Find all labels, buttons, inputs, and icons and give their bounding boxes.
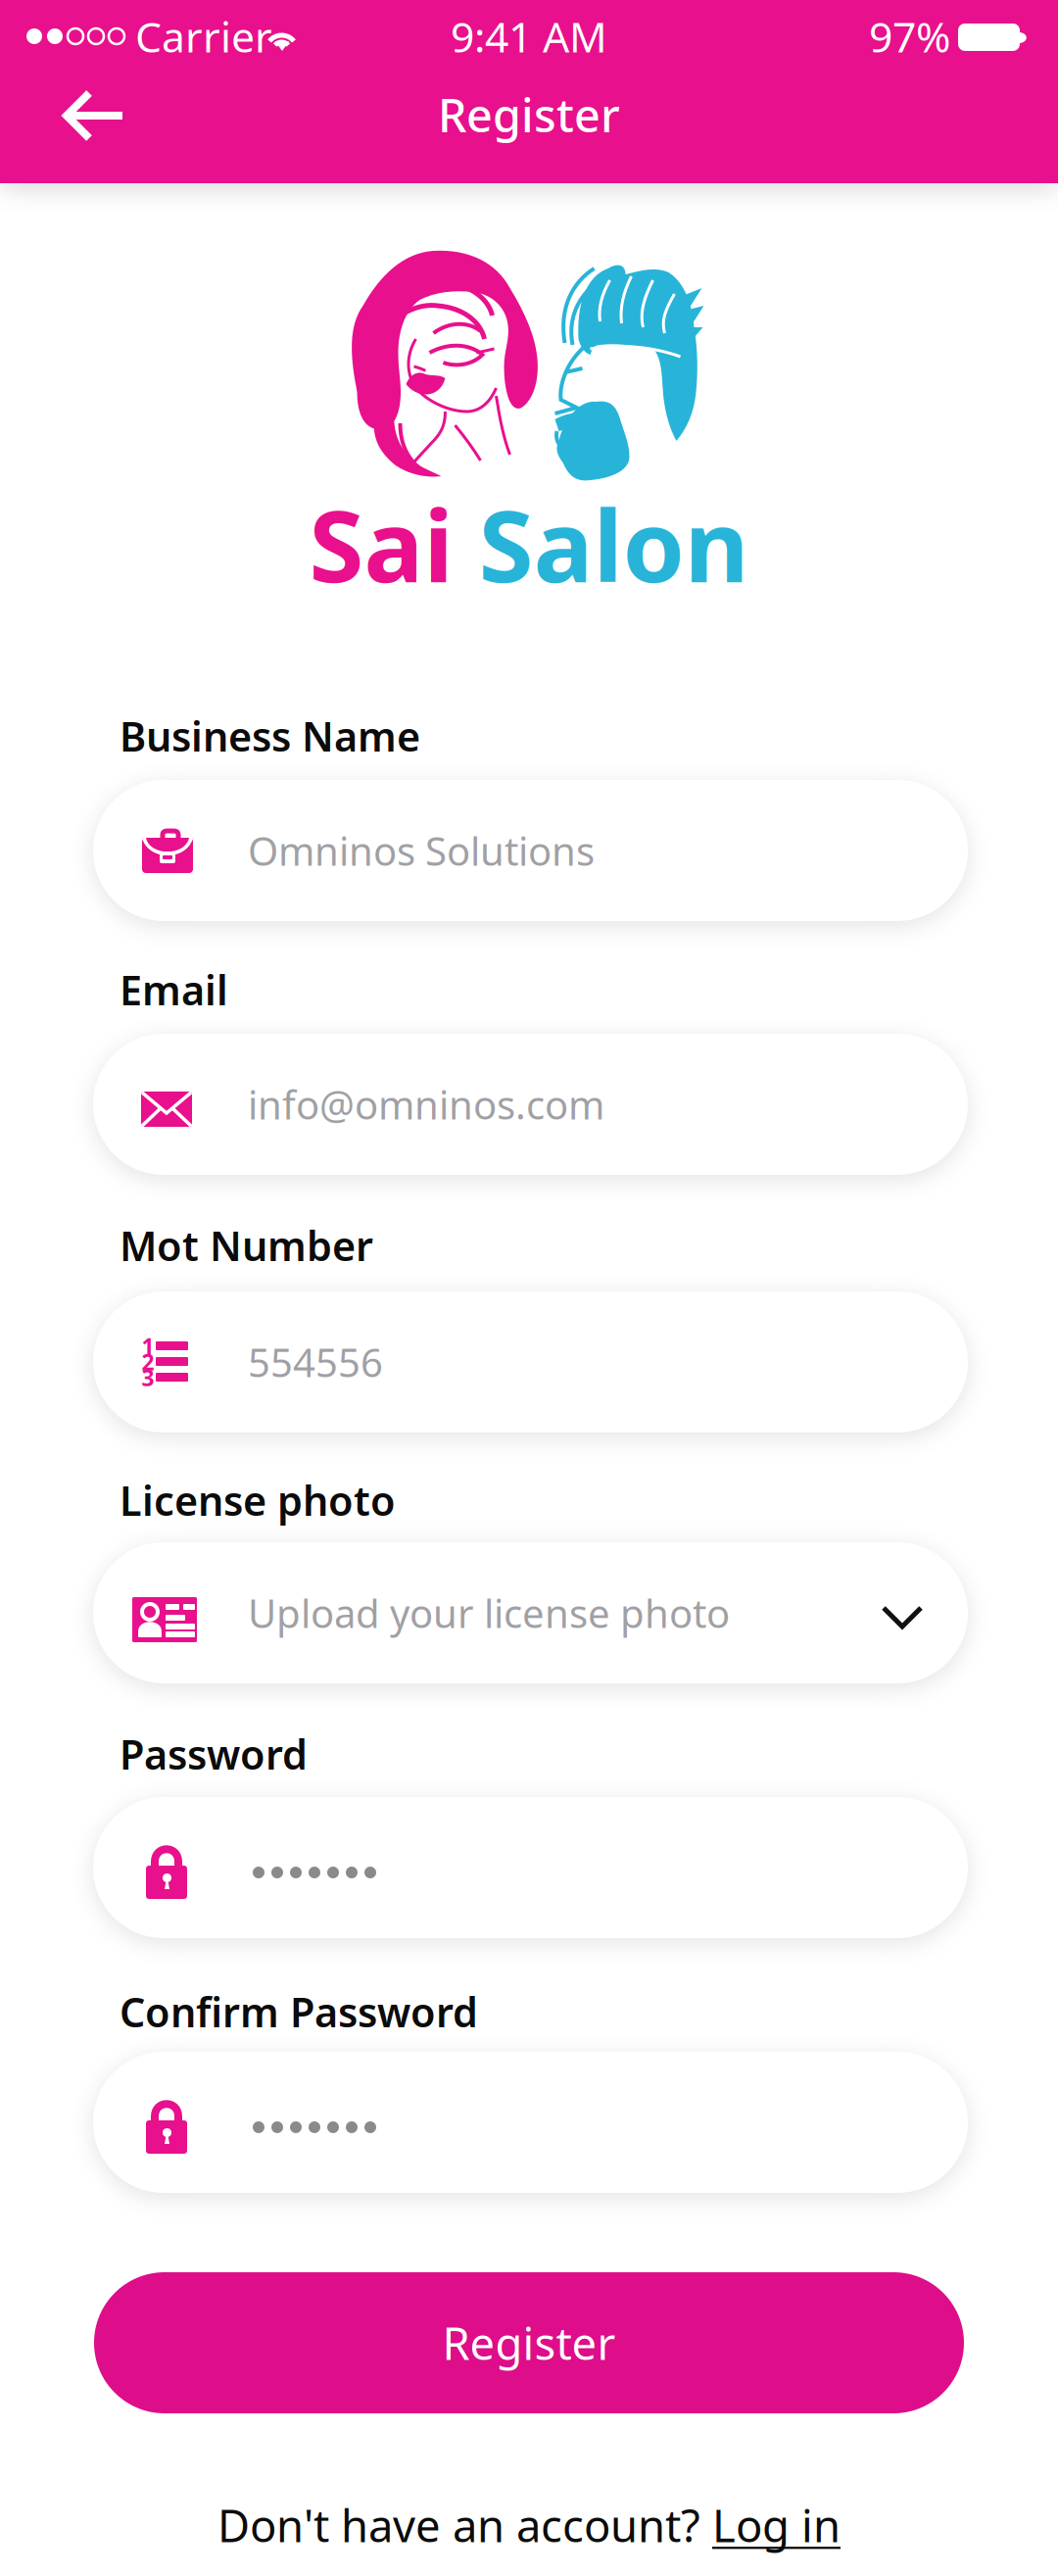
staticText: Register [438, 84, 620, 145]
staticText: Email [120, 963, 228, 1017]
button[interactable]: Don't have an account? [0, 2491, 1058, 2559]
staticText: info@omninos.com [248, 1078, 604, 1130]
staticText: 3 [142, 1363, 154, 1392]
staticText: Password [120, 1727, 308, 1781]
staticText: Sai [309, 478, 479, 610]
staticText: License photo [120, 1473, 396, 1527]
staticText: Upload your license photo [248, 1587, 730, 1639]
staticText: Carrier [135, 9, 272, 64]
staticText: Salon [479, 478, 749, 610]
staticText: Don't have an account? [217, 2496, 712, 2555]
staticText: Register [442, 2313, 616, 2372]
staticText: 2 [142, 1347, 154, 1377]
staticText: 1 [142, 1332, 154, 1361]
staticText: 97% [869, 9, 950, 64]
button[interactable]: Register [94, 2272, 964, 2413]
staticText: 554556 [248, 1336, 383, 1388]
staticText: Omninos Solutions [248, 824, 595, 876]
staticText: Business Name [120, 709, 420, 763]
staticText: 9:41 AM [451, 9, 607, 64]
staticText: Log in [712, 2496, 841, 2555]
button[interactable]: Back [39, 76, 147, 155]
staticText: Mot Number [120, 1219, 373, 1272]
staticText: Confirm Password [120, 1985, 478, 2039]
